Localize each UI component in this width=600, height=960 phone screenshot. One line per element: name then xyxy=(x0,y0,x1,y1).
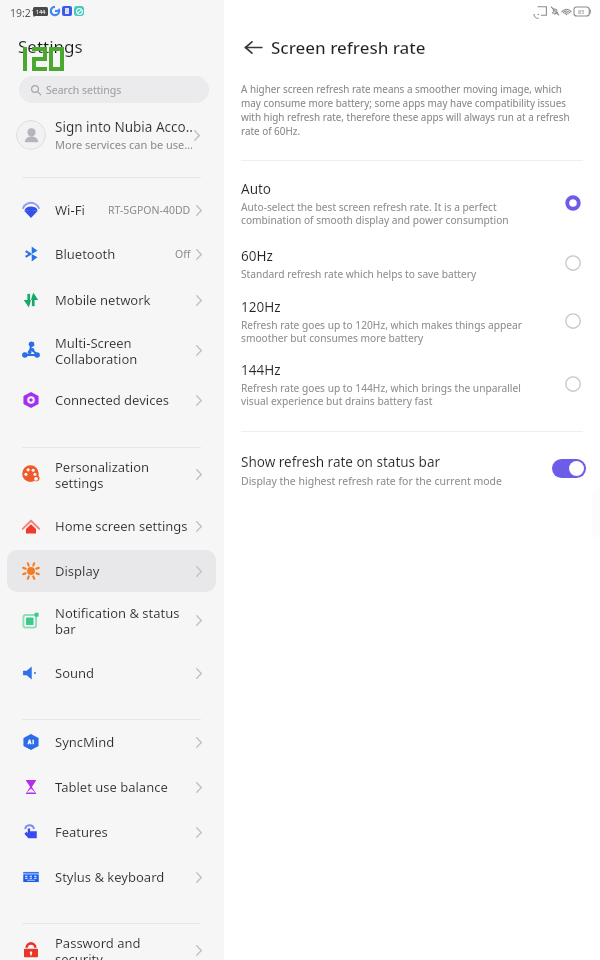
button[interactable]: Features xyxy=(7,811,216,853)
button[interactable]: 60Hz xyxy=(224,245,600,281)
staticText: Connected devices xyxy=(55,391,169,409)
staticText: Display xyxy=(55,562,100,580)
staticText: Bluetooth xyxy=(55,245,116,263)
button[interactable]: Show refresh rate on status bar xyxy=(224,448,600,492)
staticText: Password and security xyxy=(55,934,141,960)
staticText: 60Hz xyxy=(241,247,273,265)
button[interactable]: Tablet use balance xyxy=(7,766,216,808)
staticText: Features xyxy=(55,823,108,841)
staticText: Home screen settings xyxy=(55,517,188,535)
staticText: Stylus & keyboard xyxy=(55,868,165,886)
button[interactable]: Search settings xyxy=(19,76,209,103)
button[interactable]: Home screen settings xyxy=(7,505,216,547)
button[interactable]: Bluetooth xyxy=(7,233,216,275)
staticText: 144 xyxy=(36,8,46,15)
button[interactable]: SyncMind xyxy=(7,721,216,763)
staticText: 120Hz xyxy=(241,298,281,316)
staticText: Auto-select the best screen refresh rate… xyxy=(241,200,509,227)
staticText: Display the highest refresh rate for the… xyxy=(241,474,502,488)
button[interactable]: 144Hz xyxy=(224,359,600,409)
staticText: Mobile network xyxy=(55,291,151,309)
staticText: Off xyxy=(175,247,191,261)
staticText: Screen refresh rate xyxy=(271,36,426,59)
button[interactable]: Mobile network xyxy=(7,279,216,321)
button[interactable]: Wi-Fi xyxy=(7,189,216,231)
staticText: 19:21 xyxy=(10,6,37,20)
button[interactable]: Notification & status bar xyxy=(7,599,216,641)
button[interactable]: Personalization settings xyxy=(7,453,216,495)
staticText: SyncMind xyxy=(55,733,115,751)
staticText: Settings xyxy=(18,35,83,58)
staticText: Search settings xyxy=(46,83,122,97)
staticText: Sound xyxy=(55,664,95,682)
staticText: Notification & status bar xyxy=(55,604,180,637)
staticText: Wi-Fi xyxy=(55,201,85,219)
button[interactable]: Password and security xyxy=(7,929,216,960)
button[interactable]: Connected devices xyxy=(7,379,216,421)
button[interactable]: Stylus & keyboard xyxy=(7,856,216,898)
button[interactable]: Auto xyxy=(224,178,600,228)
button[interactable]: Display xyxy=(7,550,216,592)
staticText: Personalization settings xyxy=(55,458,150,491)
staticText: Tablet use balance xyxy=(55,778,168,796)
staticText: Multi-Screen Collaboration xyxy=(55,334,138,367)
staticText: Auto xyxy=(241,180,272,198)
staticText: Refresh rate goes up to 120Hz, which mak… xyxy=(241,318,522,345)
staticText: Show refresh rate on status bar xyxy=(241,453,441,471)
button[interactable]: 120Hz xyxy=(224,296,600,346)
staticText: RT-5GPON-40DD xyxy=(108,203,191,217)
staticText: 85 xyxy=(578,8,585,15)
staticText: Refresh rate goes up to 144Hz, which bri… xyxy=(241,381,521,408)
button[interactable]: Back xyxy=(238,32,268,62)
staticText: A higher screen refresh rate means a smo… xyxy=(241,82,570,138)
button[interactable]: Sound xyxy=(7,652,216,694)
staticText: Standard refresh rate which helps to sav… xyxy=(241,267,477,281)
button[interactable]: Multi-Screen Collaboration xyxy=(7,329,216,371)
staticText: Sign into Nubia Acco.. xyxy=(55,118,193,136)
staticText: More services can be use… xyxy=(55,137,193,152)
staticText: 144Hz xyxy=(241,361,281,379)
button[interactable]: Sign into Nubia Acco.. xyxy=(0,112,216,158)
